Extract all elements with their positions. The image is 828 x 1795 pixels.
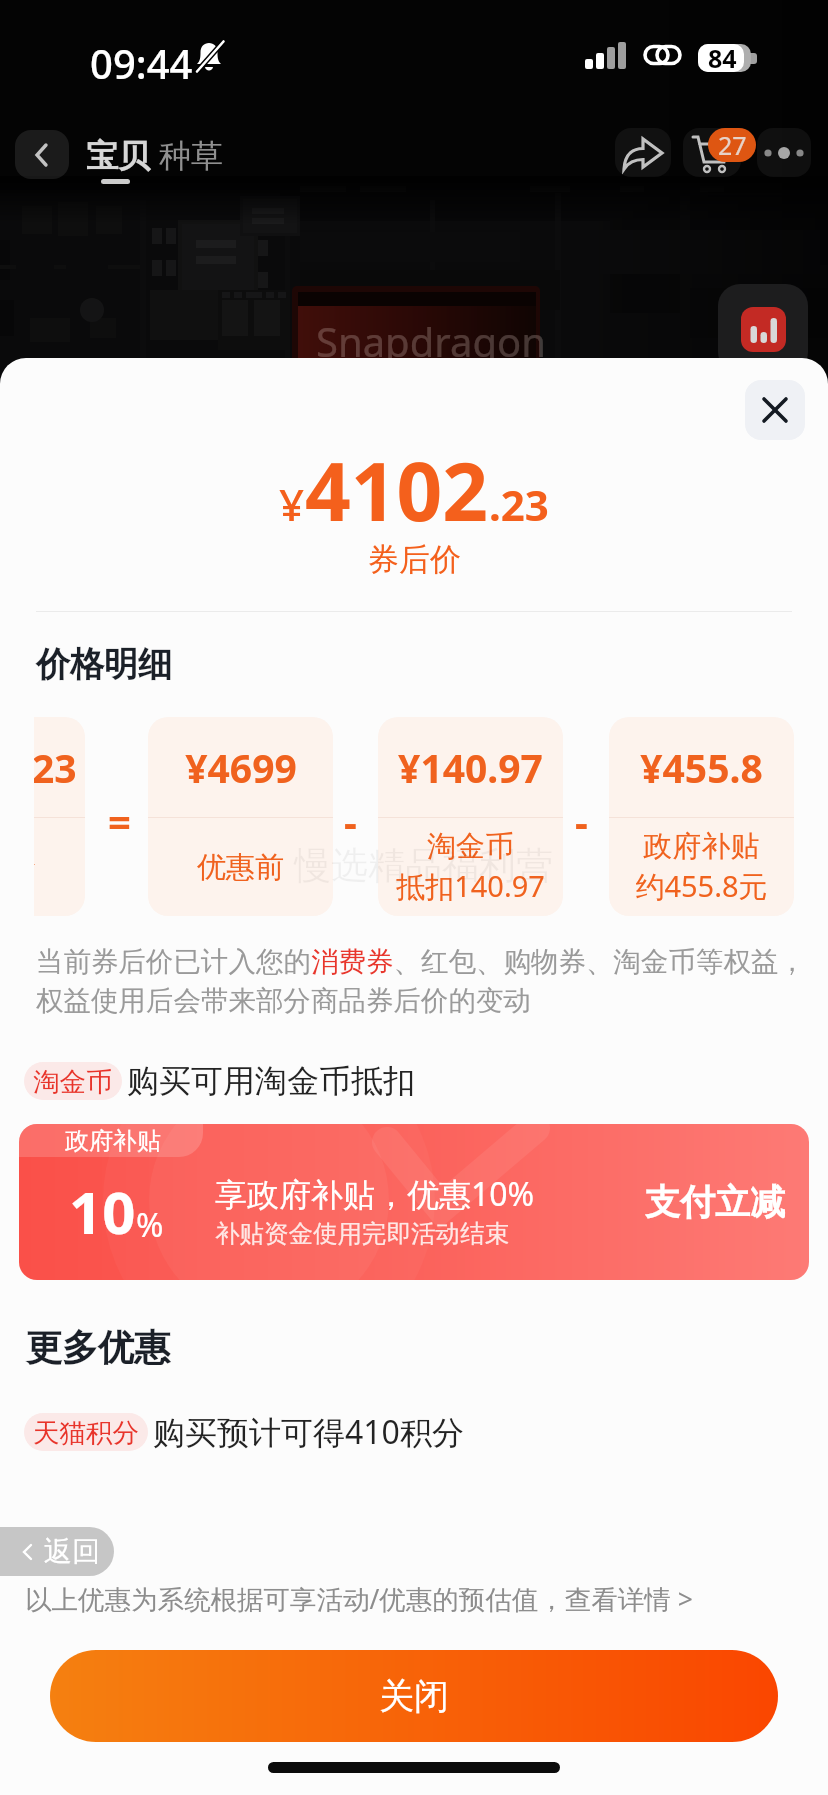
staticText: 政府补贴 (65, 1126, 161, 1156)
button[interactable]: 种草 (159, 136, 223, 176)
staticText: 补贴资金使用完即活动结束 (215, 1218, 509, 1249)
staticText: ¥455.8 (640, 741, 763, 794)
staticText: 返回 (44, 1534, 100, 1569)
button[interactable]: ¥455.8 (609, 717, 794, 916)
button[interactable]: 宝贝 (82, 134, 148, 190)
staticText: 更多优惠 (26, 1325, 170, 1370)
staticText: 淘金币 抵扣140.97 (396, 828, 545, 906)
staticText: 当前券后价已计入您的消费券、红包、购物券、淘金币等权益，权益使用后会带来部分商品… (36, 945, 814, 1018)
button[interactable]: ¥4699 (148, 717, 333, 916)
staticText: 关闭 (379, 1674, 449, 1718)
staticText: .23 (489, 476, 549, 533)
button[interactable]: Price trend chart (718, 284, 808, 374)
button[interactable]: 淘金币 (24, 1061, 415, 1101)
staticText: 享政府补贴，优惠10% (215, 1172, 535, 1216)
staticText: ¥140.97 (398, 741, 543, 794)
staticText: 政府补贴 约455.8元 (635, 828, 768, 906)
staticText: 优惠前 (197, 849, 284, 886)
button[interactable]: Shopping cart (683, 128, 741, 177)
button[interactable]: Back (15, 130, 69, 179)
button[interactable]: 天猫积分 (24, 1410, 464, 1454)
staticText: 天猫积分 (33, 1416, 139, 1449)
staticText: 券后价 (368, 540, 461, 579)
button[interactable]: ¥4102.23 (34, 717, 85, 916)
staticText: 10 (69, 1172, 136, 1251)
button[interactable]: 返回 (0, 1527, 114, 1576)
button[interactable]: More options (757, 128, 811, 177)
staticText: 宝贝 (86, 136, 150, 176)
staticText: % (136, 1202, 164, 1247)
staticText: 慢选精品福利营 (294, 842, 553, 889)
staticText: 价格明细 (36, 643, 172, 686)
button[interactable]: Share (615, 128, 671, 177)
staticText: 购买预计可得410积分 (153, 1410, 464, 1454)
button[interactable]: Close (745, 380, 805, 440)
staticText: Snapdragon (316, 314, 546, 368)
staticText: 券后价 (34, 849, 36, 886)
staticText: ¥ (279, 474, 305, 534)
button[interactable]: 政府补贴 (19, 1124, 809, 1280)
staticText: 支付立减 (645, 1180, 785, 1224)
staticText: = (108, 794, 131, 848)
staticText: 4102 (305, 435, 489, 544)
staticText: ¥4102.23 (34, 741, 77, 794)
button[interactable]: 关闭 (50, 1650, 778, 1742)
staticText: - (344, 794, 357, 848)
staticText: 09:44 (90, 36, 193, 90)
staticText: ¥4699 (185, 741, 297, 794)
staticText: 以上优惠为系统根据可享活动/优惠的预估值，查看详情 > (25, 1581, 693, 1617)
staticText: - (575, 794, 588, 848)
staticText: 购买可用淘金币抵扣 (127, 1061, 415, 1101)
button[interactable]: ¥140.97 (378, 717, 563, 916)
staticText: 淘金币 (33, 1065, 113, 1098)
staticText: 27 (718, 128, 747, 162)
staticText: 84 (708, 41, 737, 75)
